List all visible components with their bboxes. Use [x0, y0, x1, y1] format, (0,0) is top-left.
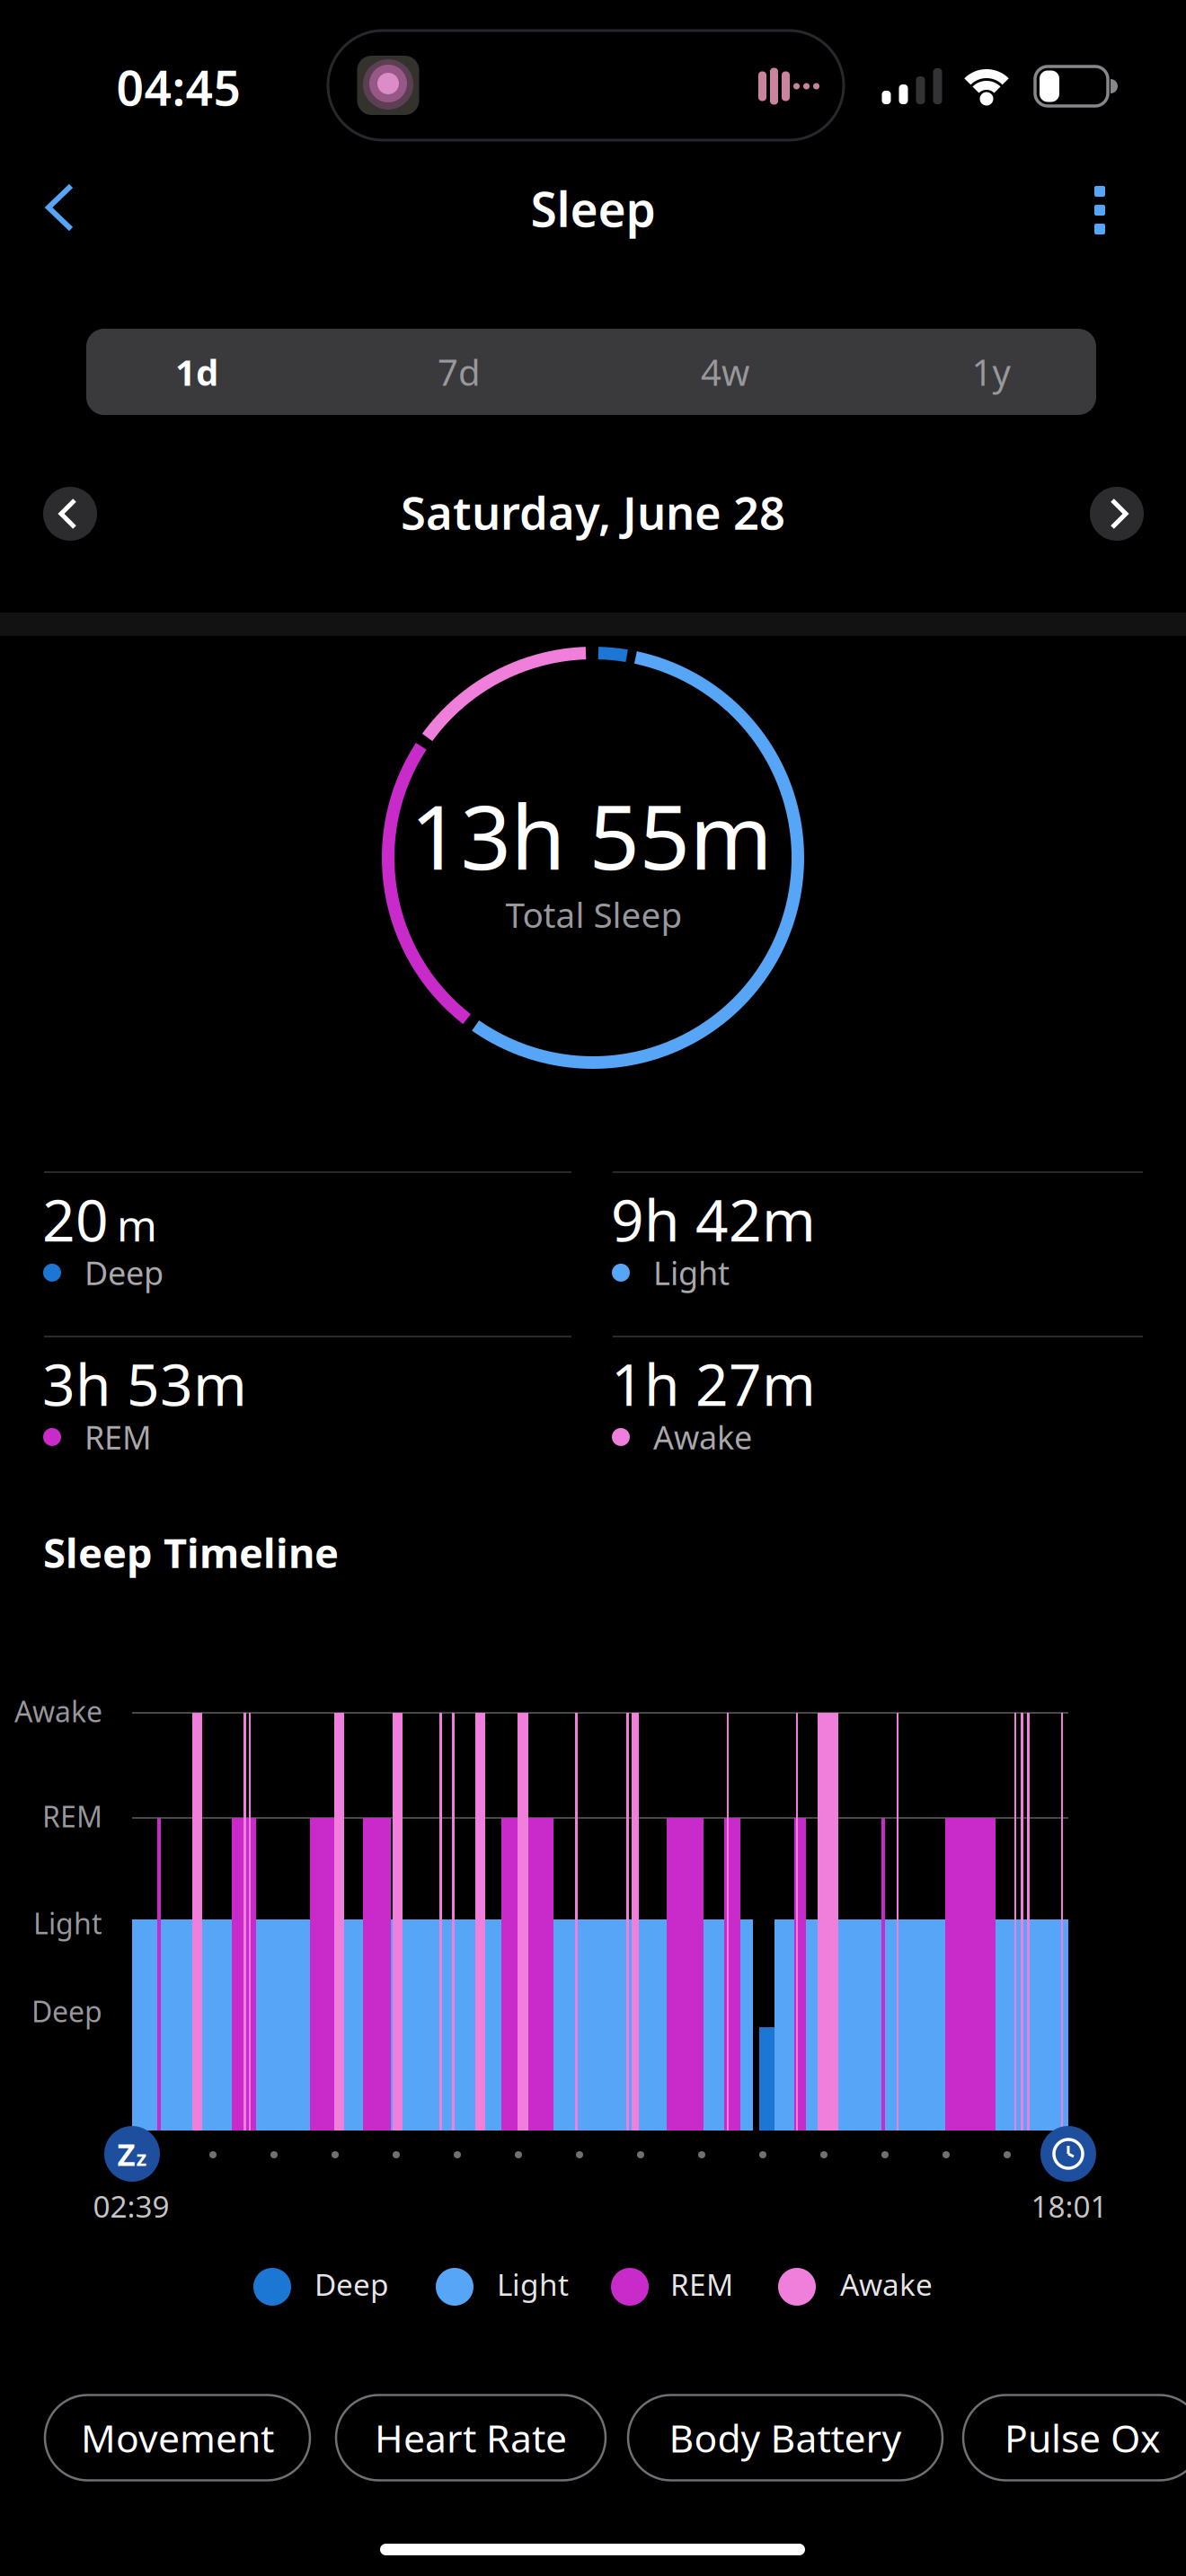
staticText: Total Sleep — [505, 891, 682, 937]
button[interactable]: More — [1073, 181, 1127, 240]
staticText: Movement — [81, 2412, 274, 2463]
staticText: 7d — [438, 348, 481, 396]
staticText: REM — [670, 2264, 733, 2304]
staticText: 1y — [972, 348, 1010, 396]
staticText: 1h 27m — [611, 1345, 816, 1422]
staticText: 9h 42m — [611, 1181, 816, 1257]
staticText: Deep — [84, 1251, 164, 1294]
button[interactable]: Next day — [1090, 487, 1144, 541]
button[interactable]: Heart Rate — [336, 2395, 606, 2480]
staticText: Light — [653, 1251, 730, 1294]
button[interactable]: Back — [39, 178, 98, 237]
staticText: 4w — [701, 348, 749, 396]
staticText: REM — [84, 1416, 152, 1458]
staticText: Z — [117, 2133, 135, 2175]
staticText: Deep — [31, 1992, 102, 2030]
staticText: z — [136, 2143, 147, 2172]
button[interactable]: Previous day — [43, 487, 97, 541]
staticText: Light — [497, 2264, 569, 2304]
button[interactable]: 1y — [865, 329, 1117, 415]
button[interactable]: 4w — [599, 329, 851, 415]
staticText: Awake — [653, 1416, 752, 1458]
staticText: 04:45 — [116, 55, 241, 119]
staticText: m — [117, 1196, 157, 1253]
staticText: Heart Rate — [375, 2412, 567, 2463]
staticText: 1d — [175, 348, 218, 396]
staticText: Sleep — [531, 177, 655, 240]
staticText: REM — [42, 1797, 102, 1835]
staticText: 18:01 — [1031, 2186, 1107, 2226]
button[interactable]: 7d — [333, 329, 585, 415]
button[interactable]: Pulse Ox — [963, 2395, 1186, 2480]
staticText: Saturday, June 28 — [401, 482, 785, 542]
staticText: Awake — [14, 1692, 102, 1730]
staticText: 3h 53m — [42, 1345, 247, 1422]
staticText: Light — [33, 1904, 102, 1942]
staticText: Sleep Timeline — [43, 1525, 339, 1579]
button[interactable]: Body Battery — [628, 2395, 943, 2480]
staticText: 02:39 — [93, 2186, 169, 2226]
staticText: 20 — [42, 1181, 109, 1257]
staticText: Body Battery — [669, 2412, 902, 2463]
button[interactable]: Movement — [45, 2395, 310, 2480]
button[interactable]: 1d — [71, 329, 323, 415]
staticText: Awake — [840, 2264, 933, 2304]
staticText: Pulse Ox — [1005, 2412, 1161, 2463]
staticText: 13h 55m — [410, 776, 772, 894]
staticText: Deep — [314, 2264, 389, 2304]
